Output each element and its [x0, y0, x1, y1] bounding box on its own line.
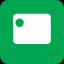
button[interactable]: [0, 0, 64, 64]
